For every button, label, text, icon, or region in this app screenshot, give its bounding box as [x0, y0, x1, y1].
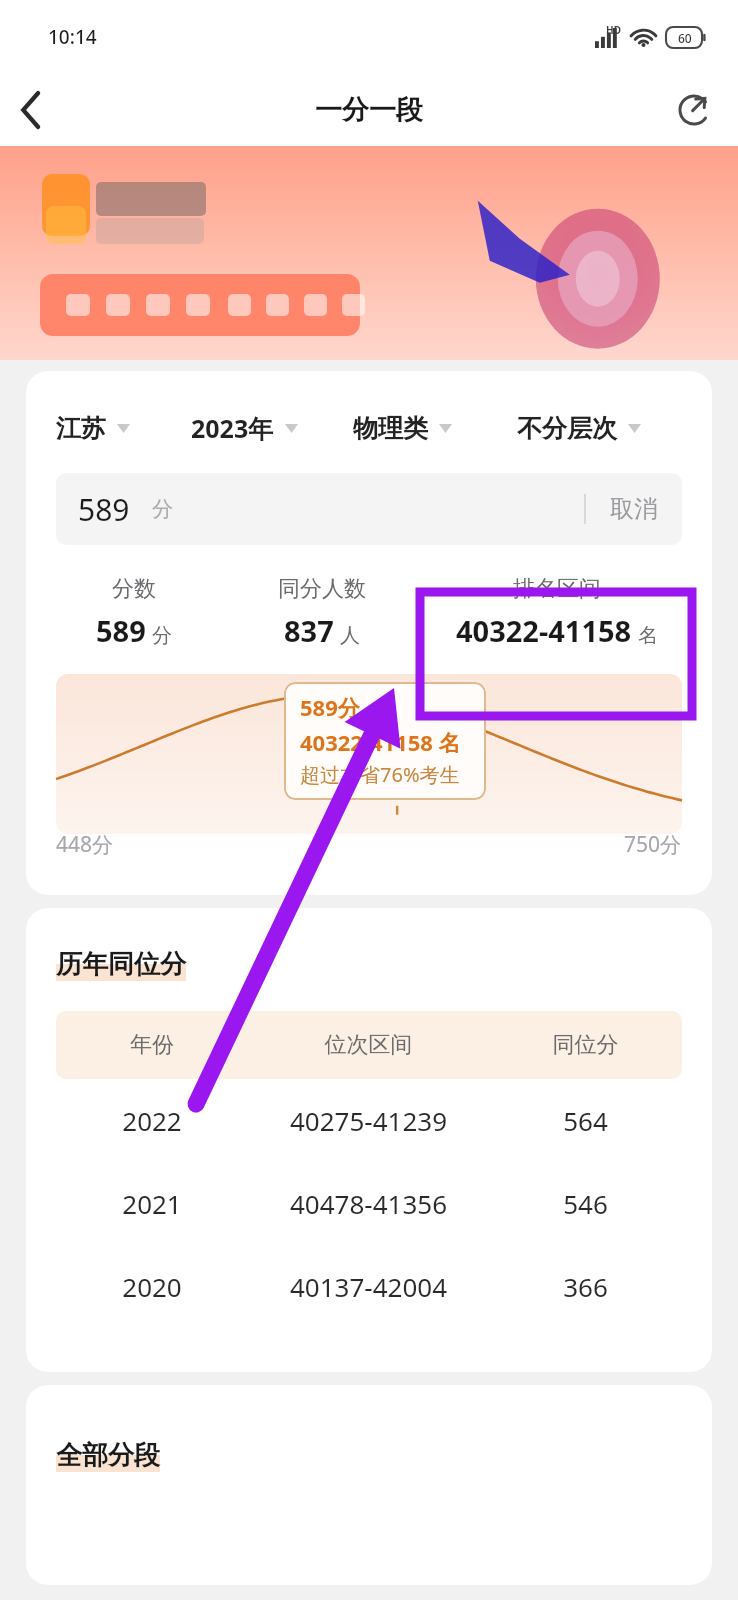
- staticText: 排名区间: [513, 575, 601, 603]
- staticText: 分: [152, 623, 172, 648]
- staticText: 2021: [56, 1186, 248, 1221]
- staticText: 2020: [56, 1269, 248, 1304]
- staticText: 位次区间: [248, 1031, 489, 1059]
- staticText: 物理类: [353, 413, 428, 444]
- staticText: 同位分: [489, 1031, 682, 1059]
- staticText: 589: [78, 489, 130, 530]
- staticText: 分数: [112, 575, 156, 603]
- staticText: 同分人数: [278, 575, 366, 603]
- staticText: 40322-41158 名: [300, 727, 461, 757]
- staticText: 40322-41158: [456, 611, 632, 650]
- button[interactable]: Share: [666, 82, 722, 138]
- staticText: 人: [340, 623, 360, 648]
- staticText: 全部分段: [56, 1439, 160, 1472]
- staticText: HD: [606, 23, 621, 37]
- staticText: 750分: [624, 830, 682, 859]
- staticText: 名: [638, 623, 658, 648]
- staticText: 448分: [56, 830, 114, 859]
- staticText: 江苏: [56, 413, 106, 444]
- staticText: 年份: [56, 1031, 248, 1059]
- staticText: 历年同位分: [56, 948, 186, 981]
- staticText: 超过本省76%考生: [300, 761, 460, 788]
- staticText: 2022: [56, 1103, 248, 1138]
- staticText: 60: [678, 30, 692, 46]
- staticText: 40478-41356: [248, 1186, 489, 1221]
- button[interactable]: 2020: [26, 1245, 712, 1328]
- staticText: 不分层次: [517, 413, 617, 444]
- button[interactable]: 取消: [586, 480, 682, 538]
- button[interactable]: Back: [0, 78, 64, 142]
- button[interactable]: 江苏: [56, 413, 191, 444]
- staticText: 589分: [300, 692, 360, 722]
- staticText: 589: [96, 611, 146, 650]
- button[interactable]: 物理类: [353, 413, 517, 444]
- button[interactable]: 2022: [26, 1079, 712, 1162]
- button[interactable]: 2023年: [191, 411, 353, 445]
- button[interactable]: 不分层次: [517, 413, 692, 444]
- staticText: 一分一段: [315, 93, 423, 127]
- staticText: 10:14: [48, 24, 97, 50]
- staticText: 取消: [610, 494, 658, 524]
- staticText: 2023年: [191, 411, 274, 445]
- staticText: 564: [489, 1103, 682, 1138]
- button[interactable]: 2021: [26, 1162, 712, 1245]
- staticText: 40137-42004: [248, 1269, 489, 1304]
- staticText: 40275-41239: [248, 1103, 489, 1138]
- staticText: 546: [489, 1186, 682, 1221]
- staticText: 366: [489, 1269, 682, 1304]
- staticText: 分: [152, 496, 173, 522]
- staticText: 837: [284, 611, 334, 650]
